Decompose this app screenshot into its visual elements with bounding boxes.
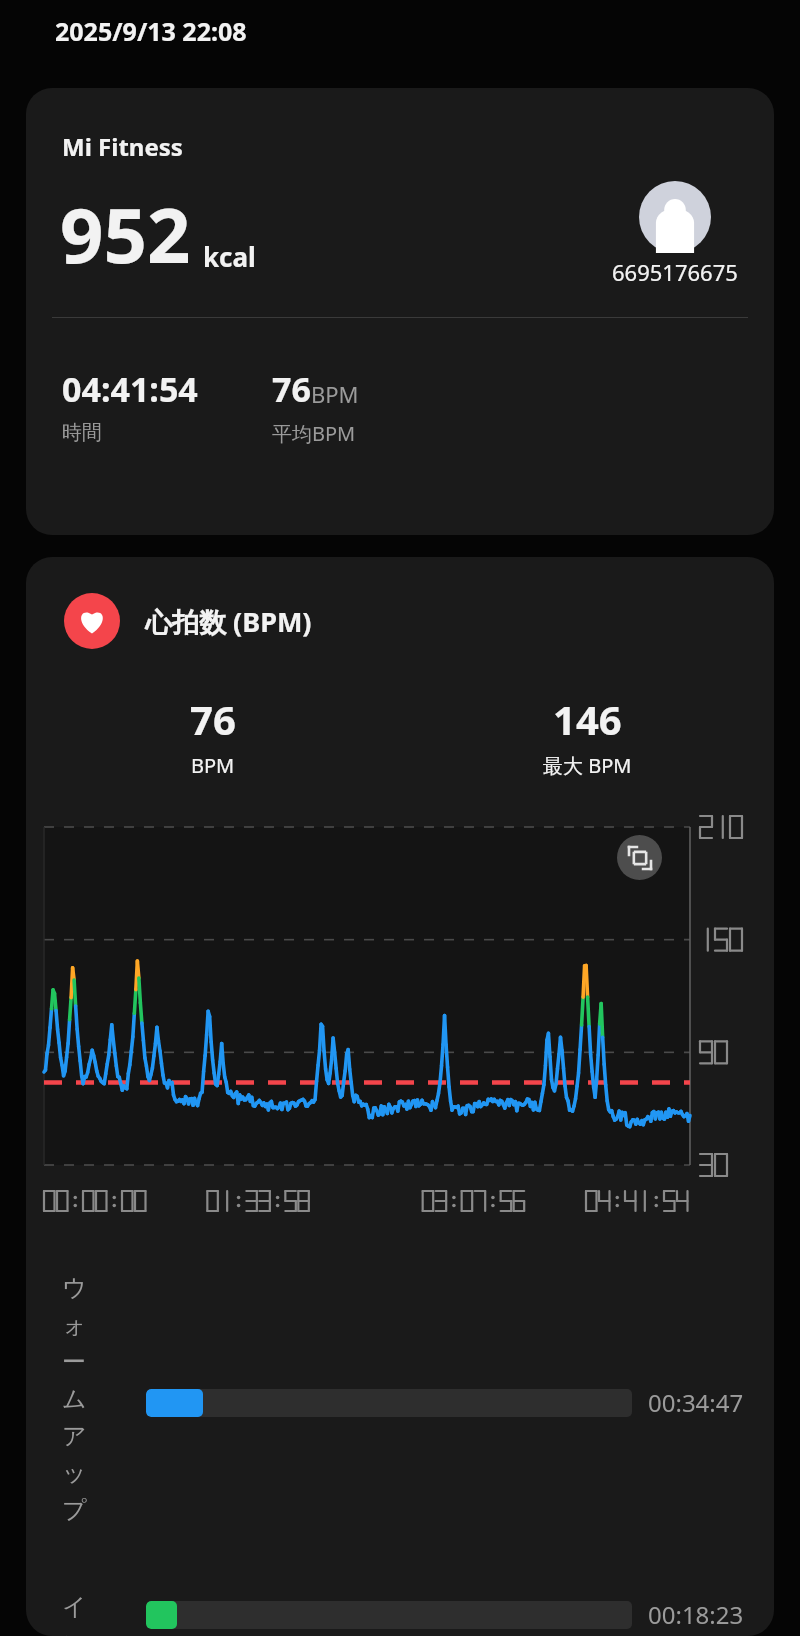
- staticText: ア: [62, 1421, 87, 1458]
- staticText: Mi Fitness: [62, 130, 183, 163]
- staticText: ッ: [62, 1458, 87, 1495]
- button[interactable]: 00:34:47: [146, 1386, 744, 1419]
- staticText: BPM: [191, 752, 235, 779]
- staticText: ー: [62, 1347, 86, 1384]
- staticText: 00:34:47: [648, 1386, 744, 1419]
- staticText: 平均BPM: [272, 420, 356, 447]
- staticText: 心拍数 (BPM): [145, 603, 312, 640]
- staticText: ウ: [62, 1273, 87, 1310]
- button[interactable]: Mi Fitness: [26, 88, 774, 535]
- staticText: 04:41:54: [62, 366, 198, 412]
- staticText: プ: [62, 1495, 87, 1532]
- staticText: ォ: [62, 1310, 87, 1347]
- button[interactable]: Expand chart: [617, 835, 662, 880]
- staticText: 6695176675: [612, 257, 738, 287]
- staticText: kcal: [203, 239, 256, 274]
- staticText: 00:18:23: [648, 1598, 744, 1631]
- staticText: 2025/9/13 22:08: [55, 14, 247, 48]
- button[interactable]: 00:18:23: [146, 1598, 744, 1631]
- staticText: 76: [190, 692, 236, 746]
- button[interactable]: Profile: [612, 181, 738, 287]
- staticText: 952: [60, 182, 191, 286]
- staticText: 最大 BPM: [543, 752, 632, 779]
- staticText: ム: [62, 1384, 87, 1421]
- staticText: BPM: [311, 379, 359, 409]
- staticText: 146: [553, 692, 622, 746]
- staticText: 76: [272, 366, 311, 412]
- staticText: イ: [62, 1592, 87, 1629]
- staticText: 時間: [62, 420, 102, 445]
